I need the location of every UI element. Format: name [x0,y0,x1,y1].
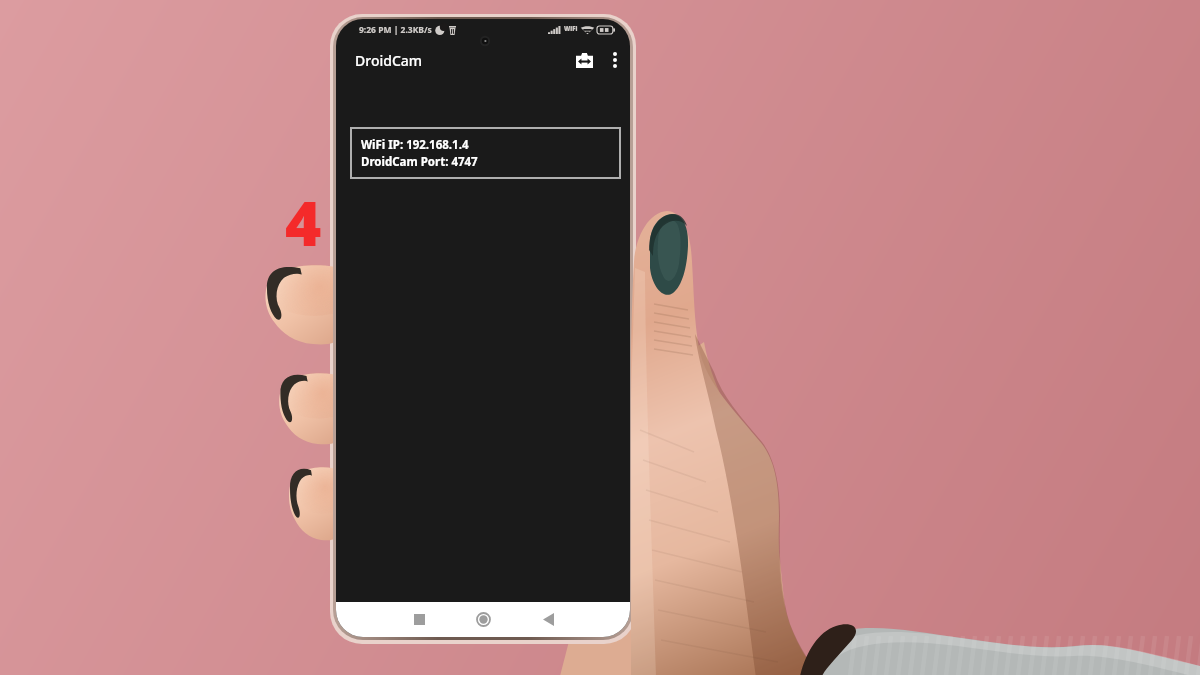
button[interactable]: More options [600,45,630,75]
button[interactable]: Home [463,602,503,637]
staticText: DroidCam Port: 4747 [361,154,478,170]
staticText: 4 [285,180,322,264]
button[interactable]: Switch camera [569,45,599,75]
staticText: WiFi [564,25,578,33]
button[interactable]: Back [528,602,568,637]
button[interactable]: Recent apps [399,602,439,637]
staticText: WiFi IP: 192.168.1.4 [361,137,469,153]
staticText: 9:26 PM | 2.3KB/s [359,24,432,36]
staticText: DroidCam [355,51,423,70]
